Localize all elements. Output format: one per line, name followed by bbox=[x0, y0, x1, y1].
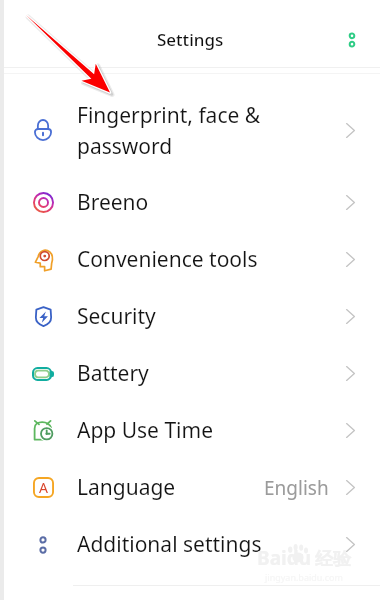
staticText: A bbox=[39, 478, 48, 497]
staticText: Battery bbox=[77, 359, 329, 388]
button[interactable]: Breeno bbox=[0, 174, 380, 231]
staticText: Settings bbox=[157, 28, 224, 51]
button[interactable]: A bbox=[0, 459, 380, 516]
staticText: App Use Time bbox=[77, 416, 329, 445]
staticText: Breeno bbox=[77, 188, 329, 217]
button[interactable]: App Use Time bbox=[0, 402, 380, 459]
button[interactable]: Convenience tools bbox=[0, 231, 380, 288]
staticText: Baidu bbox=[257, 545, 312, 571]
staticText: Fingerprint, face & password bbox=[77, 101, 329, 160]
staticText: 经验 bbox=[315, 548, 351, 571]
staticText: Additional settings bbox=[77, 530, 329, 559]
button[interactable]: Battery bbox=[0, 345, 380, 402]
button[interactable]: Fingerprint, face & password bbox=[0, 86, 380, 174]
button[interactable]: More options bbox=[330, 18, 374, 62]
staticText: Security bbox=[77, 302, 329, 331]
staticText: jingyan.baidu.com bbox=[265, 571, 343, 583]
staticText: Language bbox=[77, 473, 264, 502]
staticText: Convenience tools bbox=[77, 245, 329, 274]
button[interactable]: Additional settings bbox=[0, 516, 380, 573]
staticText: English bbox=[264, 475, 329, 501]
button[interactable]: Security bbox=[0, 288, 380, 345]
